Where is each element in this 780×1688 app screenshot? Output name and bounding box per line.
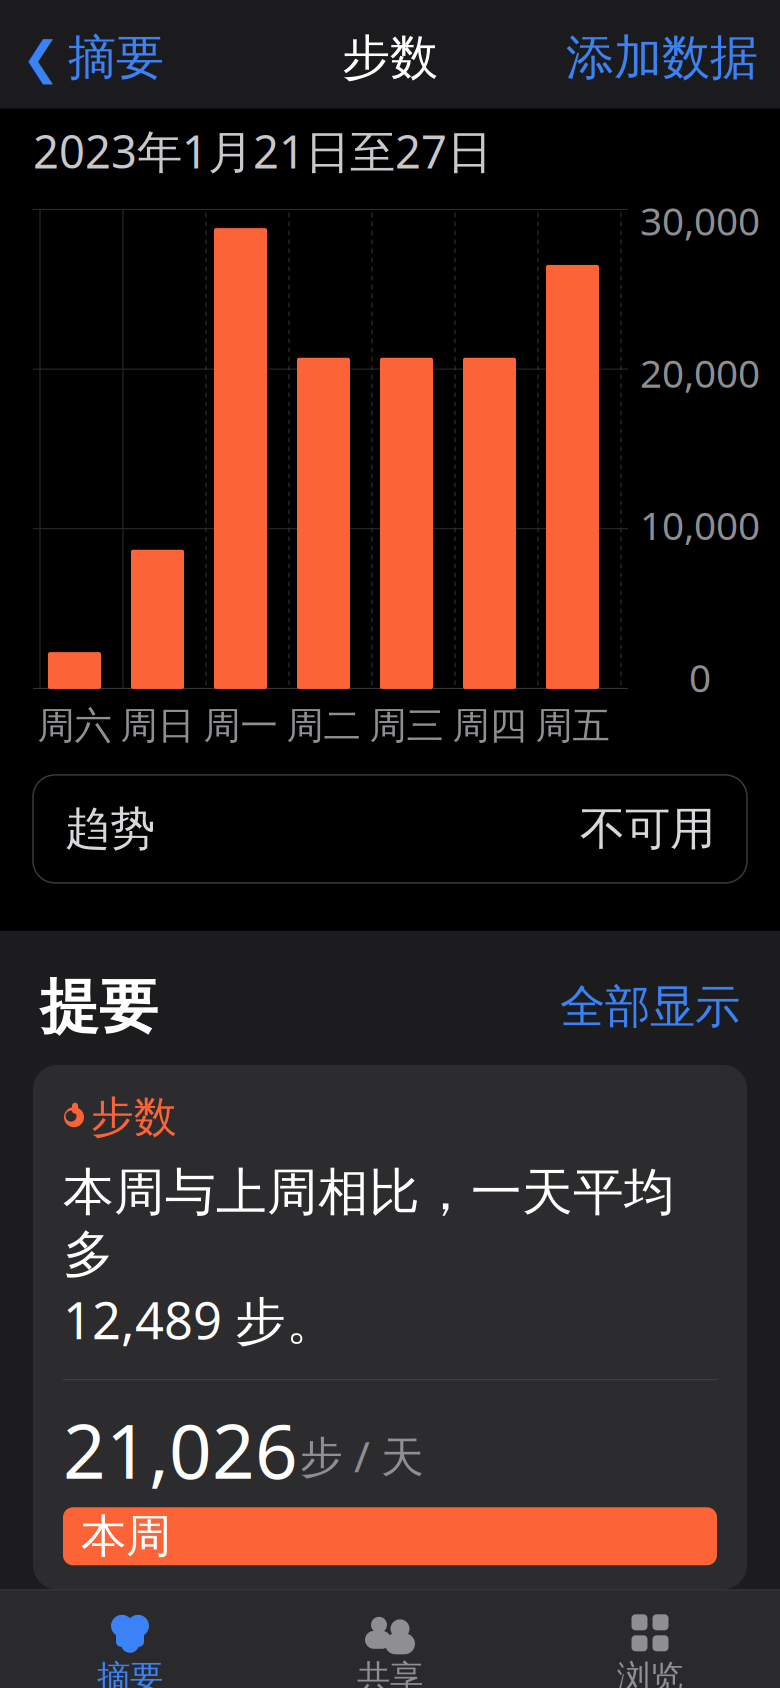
staticText: 30,000 (640, 195, 760, 246)
button[interactable]: 添加数据 (566, 20, 758, 95)
button[interactable]: 共享 (260, 1603, 520, 1688)
staticText: 0 (689, 652, 711, 703)
staticText: 周日 (120, 703, 194, 749)
button[interactable]: 摘要 (0, 1603, 260, 1688)
staticText: 本周 (81, 1508, 171, 1564)
staticText: ❮ (22, 32, 60, 83)
button[interactable]: 浏览 (520, 1603, 780, 1688)
staticText: 共享 (357, 1657, 423, 1688)
staticText: 全部显示 (560, 979, 740, 1035)
staticText: 周五 (535, 703, 609, 749)
staticText: 2023年1月21日至27日 (33, 121, 492, 181)
button[interactable]: ❮ (22, 20, 164, 95)
staticText: 20,000 (640, 347, 760, 398)
staticText: 周一 (203, 703, 277, 749)
button[interactable]: 全部显示 (560, 979, 740, 1035)
staticText: 10,000 (640, 499, 760, 551)
staticText: 步数 (91, 1091, 177, 1143)
staticText: 摘要 (68, 28, 164, 87)
staticText: 周四 (452, 703, 526, 749)
staticText: 本周与上周相比，一天平均多 12,489 步。 (63, 1161, 675, 1353)
staticText: 周二 (286, 703, 360, 749)
button[interactable]: 趋势 (33, 775, 747, 883)
staticText: 提要 (40, 971, 158, 1043)
staticText: 步数 (342, 28, 438, 87)
staticText: 周三 (369, 703, 443, 749)
button[interactable]: 步数 (33, 1065, 747, 1589)
staticText: 趋势 (65, 801, 155, 857)
staticText: 周六 (37, 703, 111, 749)
staticText: 21,026 (63, 1400, 298, 1499)
staticText: 添加数据 (566, 28, 758, 87)
staticText: 浏览 (617, 1657, 683, 1688)
staticText: 步 / 天 (300, 1427, 424, 1484)
staticText: 不可用 (580, 801, 715, 857)
staticText: 摘要 (97, 1657, 163, 1688)
